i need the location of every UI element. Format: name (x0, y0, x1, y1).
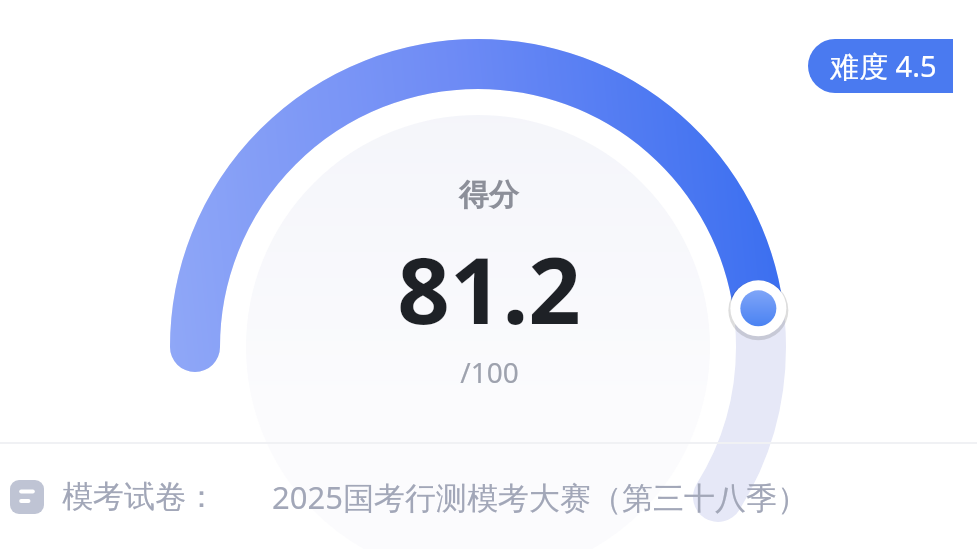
button[interactable]: 试卷 (0, 444, 977, 549)
button[interactable]: 难度 4.5 (808, 39, 953, 93)
staticText: 难度 4.5 (830, 46, 937, 86)
other: 试卷 (10, 480, 44, 514)
staticText: 2025国考行测模考大赛（第三十八季） (272, 476, 808, 518)
staticText: /100 (460, 353, 519, 391)
staticText: 得分 (459, 176, 519, 214)
staticText: 模考试卷： (62, 477, 217, 516)
staticText: 81.2 (397, 226, 581, 351)
